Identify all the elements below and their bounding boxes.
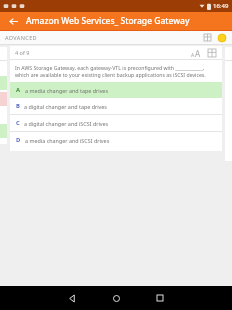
button[interactable]: Bookmark	[216, 32, 227, 43]
button[interactable]: Recent apps	[149, 287, 171, 309]
button[interactable]: Layout	[202, 32, 213, 43]
button[interactable]: Home	[105, 287, 127, 309]
staticText: 4 of 9	[15, 49, 30, 56]
button[interactable]: Change layout	[206, 47, 218, 59]
button[interactable]: C	[10, 115, 222, 131]
button[interactable]: Back	[61, 287, 83, 309]
staticText: a digital changer and tape drives	[24, 103, 107, 110]
button[interactable]: B	[10, 98, 222, 114]
staticText: a media changer and tape drives	[25, 87, 108, 94]
button[interactable]: Text size	[188, 47, 204, 59]
staticText: B	[16, 102, 20, 110]
staticText: ADVANCED	[5, 34, 37, 41]
staticText: Amazon Web Services_ Storage Gateway	[26, 15, 190, 27]
staticText: In AWS Storage Gateway, each gateway-VTL…	[15, 64, 217, 78]
staticText: a digital changer and iSCSI drives	[24, 120, 109, 127]
staticText: A	[195, 48, 201, 59]
staticText: C	[16, 119, 20, 127]
button[interactable]: Back	[5, 13, 21, 29]
staticText: a media changer and iSCSI drives	[25, 137, 110, 144]
staticText: A	[16, 86, 21, 94]
button[interactable]: A	[10, 82, 222, 98]
button[interactable]: D	[10, 132, 222, 148]
staticText: 16:49	[213, 2, 229, 10]
staticText: D	[16, 136, 21, 144]
staticText: A	[191, 52, 195, 59]
